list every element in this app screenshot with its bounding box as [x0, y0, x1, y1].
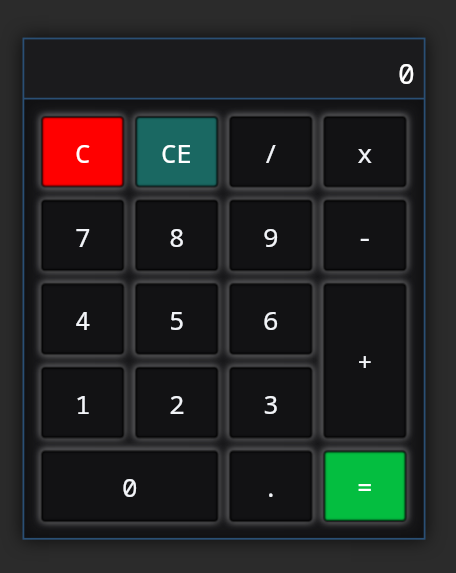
button[interactable]: 5: [136, 284, 217, 354]
button[interactable]: 9: [230, 201, 311, 271]
button[interactable]: 8: [136, 201, 217, 271]
button[interactable]: 7: [42, 201, 123, 271]
staticText: -: [357, 219, 373, 254]
button[interactable]: 3: [230, 368, 311, 438]
staticText: +: [357, 343, 373, 378]
staticText: CE: [161, 135, 193, 170]
button[interactable]: x: [324, 117, 405, 187]
staticText: .: [263, 469, 279, 504]
button[interactable]: CE: [136, 117, 217, 187]
button[interactable]: -: [324, 201, 405, 271]
staticText: /: [263, 135, 279, 170]
staticText: 0: [122, 469, 138, 504]
staticText: =: [357, 469, 373, 504]
staticText: x: [357, 135, 373, 170]
button[interactable]: +: [324, 284, 405, 437]
staticText: 3: [263, 386, 279, 421]
staticText: 8: [169, 219, 185, 254]
button[interactable]: 0: [42, 451, 217, 521]
button[interactable]: C: [42, 117, 123, 187]
button[interactable]: 4: [42, 284, 123, 354]
staticText: 0: [398, 54, 415, 92]
button[interactable]: .: [230, 451, 311, 521]
button[interactable]: 1: [42, 368, 123, 438]
button[interactable]: /: [230, 117, 311, 187]
staticText: C: [75, 135, 91, 170]
staticText: 4: [75, 302, 91, 337]
button[interactable]: =: [324, 451, 405, 521]
button[interactable]: 6: [230, 284, 311, 354]
button[interactable]: 2: [136, 368, 217, 438]
staticText: 6: [263, 302, 279, 337]
staticText: 9: [263, 219, 279, 254]
staticText: 1: [75, 386, 91, 421]
staticText: 7: [75, 219, 91, 254]
staticText: 2: [169, 386, 185, 421]
staticText: 5: [169, 302, 185, 337]
